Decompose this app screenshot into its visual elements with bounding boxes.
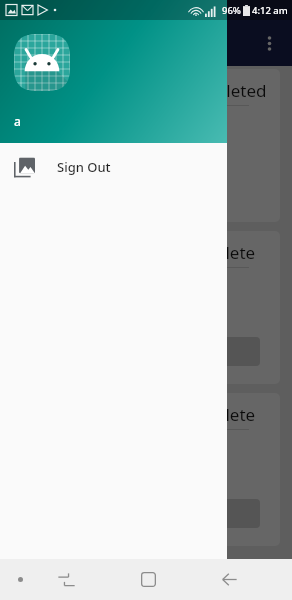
button[interactable]: The request is now complete	[12, 393, 280, 546]
button[interactable]: SUBMIT	[26, 337, 260, 366]
staticText: Your task has been completed	[26, 79, 266, 102]
button[interactable]: Your task has been completed	[12, 69, 280, 222]
staticText: a	[14, 113, 21, 129]
button[interactable]: Back	[211, 559, 247, 600]
button[interactable]: SUBMIT	[26, 499, 260, 528]
staticText: 96%	[222, 4, 241, 17]
button[interactable]: Home	[130, 559, 166, 600]
button[interactable]: The request is now complete	[12, 231, 280, 384]
staticText: The request is now complete	[26, 403, 256, 426]
staticText: The request is now complete	[26, 241, 256, 264]
button[interactable]: Notification indicator	[11, 559, 29, 600]
button[interactable]: Recents	[48, 559, 84, 600]
button[interactable]: Sign Out	[0, 143, 227, 191]
staticText: 4:12 am	[252, 4, 288, 17]
button[interactable]: More options	[252, 26, 286, 60]
staticText: Sign Out	[57, 158, 111, 176]
